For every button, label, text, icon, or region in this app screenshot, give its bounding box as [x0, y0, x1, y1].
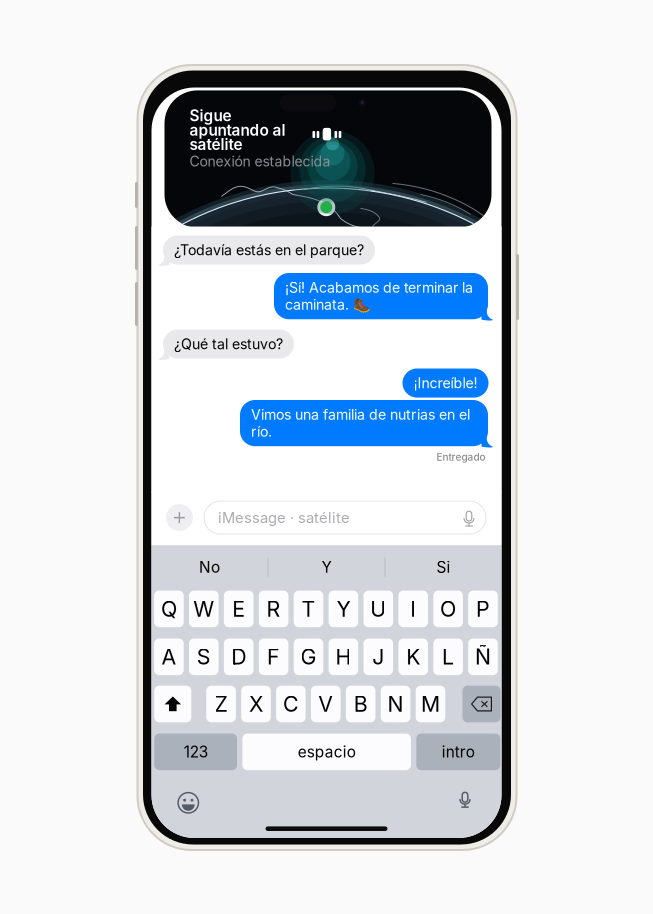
staticText: Z — [215, 691, 228, 717]
staticText: apuntando al — [189, 121, 285, 139]
button[interactable]: iMessage · satélite — [204, 501, 486, 534]
staticText: W — [193, 596, 214, 622]
staticText: Entregado — [436, 451, 485, 463]
staticText: espacio — [298, 743, 356, 761]
button[interactable]: ¿Todavía estás en el parque? — [163, 235, 375, 265]
staticText: satélite — [189, 135, 242, 154]
button[interactable]: Emoji keyboard — [177, 792, 199, 814]
staticText: ¿Todavía estás en el parque? — [174, 241, 364, 259]
staticText: ¡Increíble! — [413, 374, 477, 392]
staticText: intro — [442, 743, 475, 761]
staticText: R — [267, 596, 281, 622]
button[interactable]: ¡Sí! Acabamos de terminar la caminata. 🥾 — [274, 273, 488, 319]
staticText: Conexión establecida — [189, 153, 330, 170]
staticText: V — [318, 691, 333, 717]
staticText: Y — [336, 596, 350, 622]
button[interactable]: J — [363, 638, 393, 675]
button[interactable]: No — [151, 545, 267, 589]
button[interactable]: Add attachment — [166, 504, 193, 531]
button[interactable]: A — [154, 638, 184, 675]
staticText: D — [231, 644, 246, 670]
button[interactable]: L — [433, 638, 463, 675]
staticText: Ñ — [475, 644, 491, 670]
button[interactable]: N — [381, 686, 410, 722]
button[interactable]: S — [189, 638, 219, 675]
staticText: X — [249, 691, 263, 717]
staticText: Q — [161, 596, 177, 622]
button[interactable]: O — [433, 591, 463, 627]
button[interactable]: 123 — [154, 734, 237, 770]
button[interactable]: Dictation — [457, 790, 472, 810]
staticText: C — [283, 691, 299, 717]
staticText: B — [354, 691, 368, 717]
button[interactable]: espacio — [242, 734, 411, 770]
staticText: U — [370, 596, 386, 622]
button[interactable]: K — [398, 638, 428, 675]
staticText: iMessage · satélite — [218, 509, 350, 526]
staticText: ¿Qué tal estuvo? — [174, 335, 283, 353]
staticText: P — [476, 596, 490, 622]
button[interactable]: ¿Qué tal estuvo? — [163, 329, 294, 359]
staticText: M — [421, 691, 440, 717]
staticText: K — [406, 644, 420, 670]
button[interactable]: P — [468, 591, 498, 627]
button[interactable]: Ñ — [468, 638, 498, 675]
button[interactable]: Delete — [462, 686, 500, 722]
staticText: S — [197, 644, 211, 670]
button[interactable]: I — [398, 591, 428, 627]
staticText: T — [301, 596, 315, 622]
button[interactable]: intro — [416, 734, 500, 770]
staticText: Y — [321, 558, 331, 576]
button[interactable]: H — [329, 638, 358, 675]
button[interactable]: E — [224, 591, 253, 627]
button[interactable]: T — [294, 591, 323, 627]
staticText: H — [335, 644, 351, 670]
button[interactable]: M — [416, 686, 445, 722]
staticText: I — [410, 596, 416, 622]
staticText: A — [161, 644, 176, 670]
button[interactable]: Q — [154, 591, 184, 627]
button[interactable]: Si — [385, 545, 501, 589]
button[interactable]: B — [346, 686, 375, 722]
staticText: No — [199, 558, 220, 576]
staticText: G — [300, 644, 316, 670]
button[interactable]: Y — [268, 545, 384, 589]
button[interactable]: G — [294, 638, 323, 675]
button[interactable]: F — [259, 638, 288, 675]
button[interactable]: X — [241, 686, 271, 722]
staticText: L — [442, 644, 454, 670]
button[interactable]: D — [224, 638, 253, 675]
staticText: N — [388, 691, 404, 717]
staticText: Sigue — [189, 106, 231, 125]
staticText: E — [232, 596, 245, 622]
staticText: J — [372, 644, 384, 670]
staticText: F — [267, 644, 280, 670]
button[interactable]: Y — [329, 591, 358, 627]
button[interactable]: R — [259, 591, 288, 627]
staticText: Vimos una familia de nutrias en el río. — [251, 406, 470, 440]
button[interactable]: Vimos una familia de nutrias en el río. — [240, 400, 488, 446]
button[interactable]: W — [189, 591, 219, 627]
staticText: Si — [436, 558, 450, 576]
button[interactable]: C — [276, 686, 306, 722]
button[interactable]: Shift — [154, 686, 191, 722]
button[interactable]: V — [311, 686, 341, 722]
button[interactable]: U — [363, 591, 393, 627]
staticText: ¡Sí! Acabamos de terminar la caminata. 🥾 — [285, 279, 473, 313]
staticText: 123 — [184, 743, 208, 761]
button[interactable]: ¡Increíble! — [402, 368, 488, 398]
staticText: O — [440, 596, 456, 622]
button[interactable]: Z — [206, 686, 236, 722]
